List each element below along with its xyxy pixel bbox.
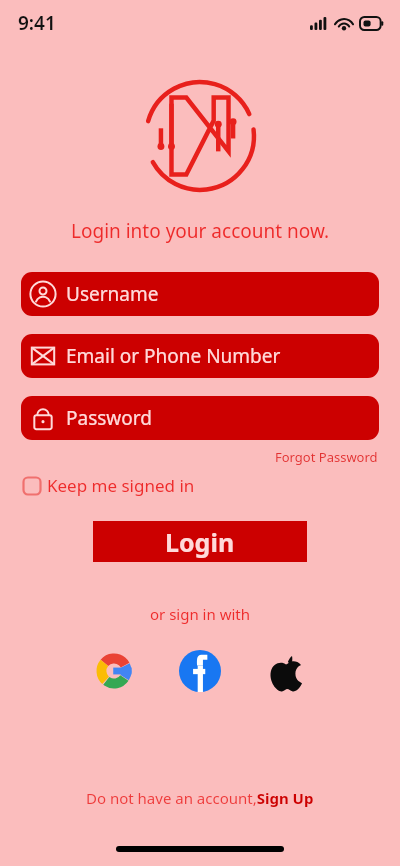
staticText: Forgot Password (275, 448, 378, 466)
button[interactable]: Password (21, 396, 379, 440)
staticText: Email or Phone Number (66, 343, 281, 369)
button[interactable]: Sign in with Facebook (177, 648, 223, 694)
button[interactable]: Do not have an account,Sign Up (0, 788, 400, 808)
button[interactable]: Username (21, 272, 379, 316)
staticText: Login (165, 525, 235, 559)
button[interactable]: Login (93, 521, 307, 562)
staticText: Username (66, 281, 159, 307)
staticText: Password (66, 405, 152, 431)
staticText: Login into your account now. (71, 218, 330, 244)
staticText: or sign in with (150, 604, 251, 624)
button[interactable]: Email or Phone Number (21, 334, 379, 378)
button[interactable]: Forgot Password (273, 446, 380, 468)
button[interactable]: Sign in with Google (91, 648, 137, 694)
button[interactable]: Sign in with Apple (263, 648, 309, 694)
staticText: 9:41 (18, 10, 56, 36)
staticText: Keep me signed in (47, 474, 195, 497)
staticText: Do not have an account,Sign Up (86, 788, 314, 808)
button[interactable]: Keep me signed in (22, 474, 195, 497)
